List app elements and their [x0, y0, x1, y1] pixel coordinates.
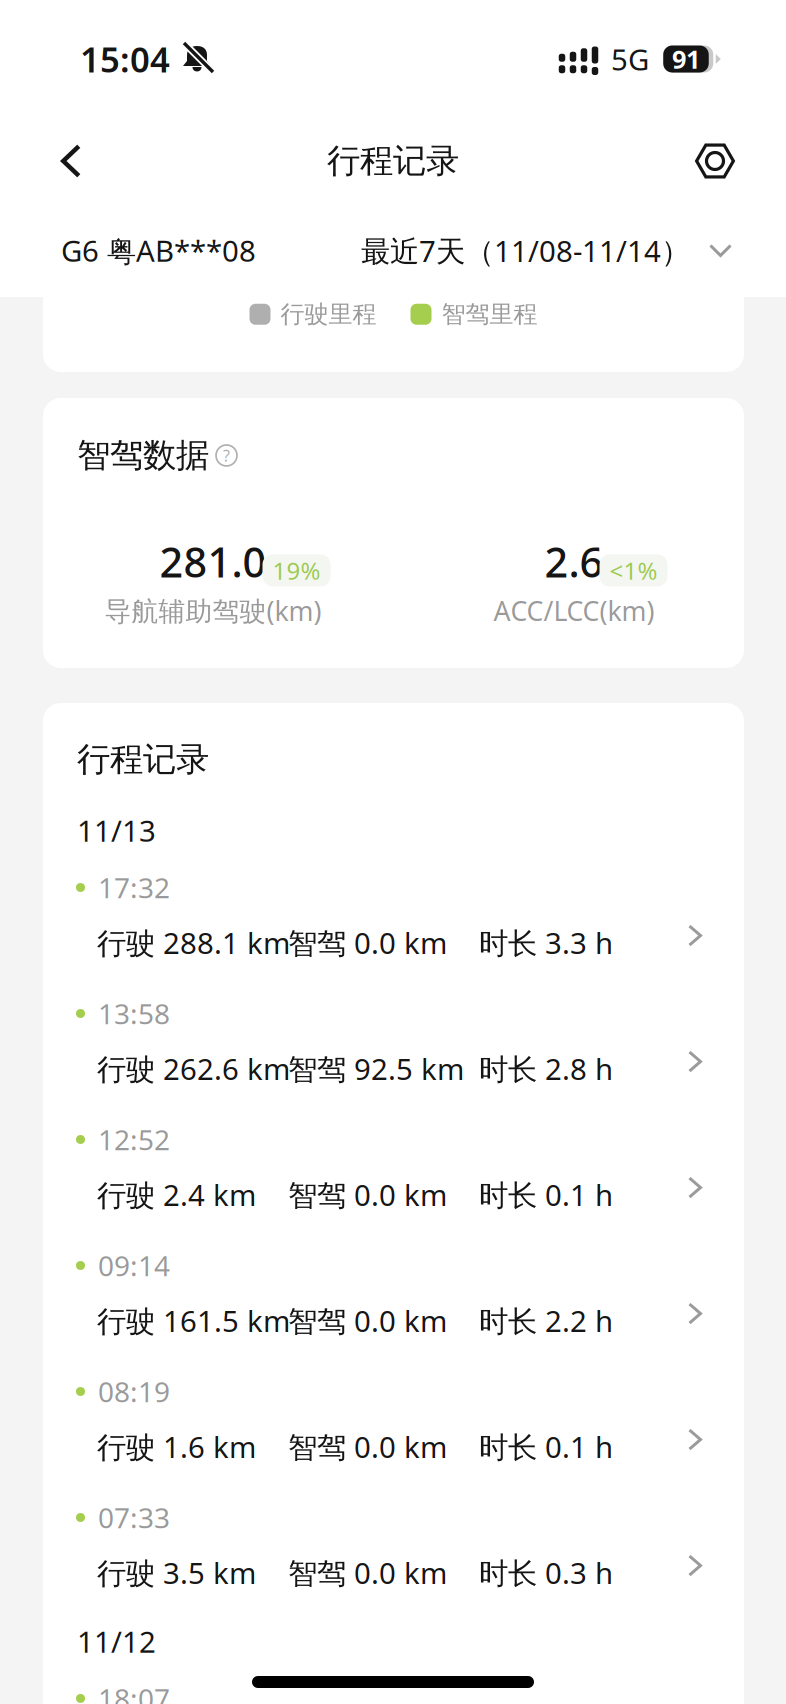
button[interactable]: 18:07	[43, 1661, 744, 1704]
staticText: 智驾里程	[441, 299, 537, 329]
staticText: 时长 3.3 h	[479, 923, 613, 962]
staticText: 行驶 288.1 km	[97, 923, 290, 962]
staticText: ACC/LCC(km)	[493, 593, 654, 628]
staticText: G6 粤AB***08	[61, 231, 256, 270]
button[interactable]: 13:58	[43, 976, 744, 1102]
staticText: 时长 2.2 h	[479, 1301, 613, 1340]
staticText: 18:07	[98, 1680, 170, 1704]
button[interactable]: G6 粤AB***08	[61, 231, 256, 270]
staticText: 最近7天（11/08-11/14）	[361, 231, 690, 270]
staticText: 行驶 2.4 km	[97, 1175, 256, 1214]
staticText: 智驾 0.0 km	[288, 923, 447, 962]
staticText: <1%	[609, 554, 657, 586]
staticText: 91	[672, 42, 700, 76]
staticText: 智驾 0.0 km	[288, 1175, 447, 1214]
button[interactable]: 08:19	[43, 1354, 744, 1480]
button[interactable]: 返回	[35, 125, 107, 197]
staticText: ?	[223, 445, 230, 466]
staticText: 行驶 3.5 km	[97, 1553, 256, 1592]
button[interactable]: 17:32	[43, 850, 744, 976]
staticText: 时长 0.3 h	[479, 1553, 613, 1592]
staticText: 导航辅助驾驶(km)	[104, 593, 321, 628]
staticText: 09:14	[98, 1247, 170, 1284]
staticText: 08:19	[98, 1373, 170, 1410]
button[interactable]: 12:52	[43, 1102, 744, 1228]
staticText: 时长 0.1 h	[479, 1175, 613, 1214]
staticText: 11/13	[77, 811, 156, 850]
staticText: 智驾 0.0 km	[288, 1301, 447, 1340]
staticText: 智驾数据	[77, 435, 209, 476]
staticText: 行程记录	[327, 140, 459, 181]
staticText: 13:58	[98, 995, 170, 1032]
staticText: 19%	[272, 554, 320, 586]
button[interactable]: 最近7天（11/08-11/14）	[361, 231, 732, 270]
staticText: 15:04	[80, 36, 170, 82]
staticText: 时长 0.1 h	[479, 1427, 613, 1466]
button[interactable]: 09:14	[43, 1228, 744, 1354]
staticText: 5G	[611, 39, 649, 78]
button[interactable]: 设置	[679, 125, 751, 197]
staticText: 行程记录	[77, 739, 209, 780]
staticText: 时长 2.8 h	[479, 1049, 613, 1088]
staticText: 17:32	[98, 869, 170, 906]
staticText: 智驾 0.0 km	[288, 1553, 447, 1592]
staticText: 行驶里程	[280, 299, 376, 329]
staticText: 12:52	[98, 1121, 170, 1158]
staticText: 2.6	[544, 534, 603, 589]
staticText: 行驶 1.6 km	[97, 1427, 256, 1466]
staticText: 行驶 161.5 km	[97, 1301, 290, 1340]
staticText: 281.0	[159, 534, 266, 589]
staticText: 11/12	[77, 1622, 156, 1661]
staticText: 智驾 92.5 km	[288, 1049, 464, 1088]
staticText: 行驶 262.6 km	[97, 1049, 290, 1088]
staticText: 智驾 0.0 km	[288, 1427, 447, 1466]
staticText: 07:33	[98, 1499, 170, 1536]
button[interactable]: 07:33	[43, 1480, 744, 1606]
